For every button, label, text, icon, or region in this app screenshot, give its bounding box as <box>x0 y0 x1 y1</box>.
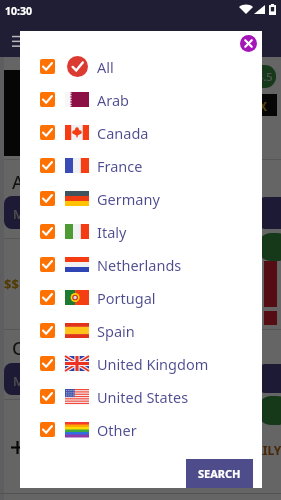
button[interactable]: MORE <box>4 196 72 229</box>
button[interactable]: Spain <box>20 314 262 347</box>
button[interactable]: Canada <box>20 116 262 149</box>
staticText: 10:30 <box>5 4 32 18</box>
staticText: MORE <box>13 205 51 223</box>
button[interactable]: Close <box>240 35 257 52</box>
staticText: X <box>259 98 268 114</box>
staticText: Italy <box>97 222 127 242</box>
staticText: Portugal <box>97 288 156 308</box>
staticText: France <box>97 156 143 176</box>
staticText: All <box>97 57 114 77</box>
button[interactable]: Add <box>11 441 24 454</box>
button[interactable]: SEARCH <box>186 459 253 488</box>
button[interactable]: Italy <box>20 215 262 248</box>
button[interactable]: Menu <box>12 34 23 49</box>
staticText: Amsterdam <box>12 170 113 195</box>
staticText: United Kingdom <box>97 354 209 374</box>
staticText: SEARCH <box>198 466 241 481</box>
staticText: Netherlands <box>97 255 182 275</box>
button[interactable]: Netherlands <box>20 248 262 281</box>
button[interactable]: France <box>20 149 262 182</box>
staticText: MORE <box>13 372 51 390</box>
staticText: Other <box>97 420 137 440</box>
button[interactable]: United Kingdom <box>20 347 262 380</box>
button[interactable]: Other <box>20 413 262 446</box>
button[interactable]: Arab <box>20 83 262 116</box>
button[interactable]: United States <box>20 380 262 413</box>
staticText: DAILY <box>246 442 281 458</box>
staticText: $$ <box>4 275 19 293</box>
staticText: Cairo <box>12 336 57 361</box>
staticText: Canada <box>97 123 149 143</box>
button[interactable]: Portugal <box>20 281 262 314</box>
staticText: Spain <box>97 321 135 341</box>
staticText: 4.5 <box>257 69 273 84</box>
staticText: United States <box>97 387 189 407</box>
staticText: Germany <box>97 189 160 209</box>
button[interactable]: Germany <box>20 182 262 215</box>
button[interactable]: MORE <box>4 363 72 395</box>
button[interactable]: All <box>20 50 262 83</box>
staticText: Arab <box>97 90 130 110</box>
